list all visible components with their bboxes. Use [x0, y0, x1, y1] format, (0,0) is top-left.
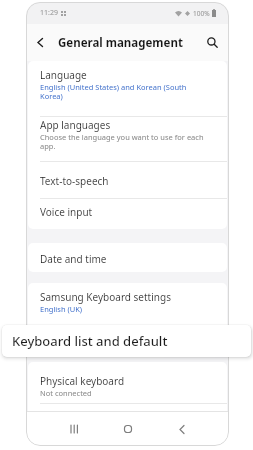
button[interactable]: Samsung Keyboard settings [28, 283, 227, 318]
button[interactable]: Physical keyboard [28, 362, 227, 403]
staticText: General management [58, 35, 183, 51]
staticText: Choose the language you want to use for … [40, 132, 204, 152]
button[interactable]: Voice input [28, 199, 227, 229]
staticText: Language [40, 68, 87, 82]
staticText: App languages [40, 118, 111, 132]
staticText: 100% [193, 9, 210, 18]
button[interactable] [26, 24, 54, 61]
button[interactable] [195, 24, 229, 61]
button[interactable] [168, 412, 196, 446]
staticText: 11:29 [40, 8, 58, 18]
staticText: Not connected [40, 388, 92, 398]
staticText: Text-to-speech [40, 174, 109, 188]
button[interactable] [114, 412, 142, 446]
staticText: Samsung Keyboard settings [40, 290, 171, 304]
staticText: Physical keyboard [40, 374, 125, 388]
button[interactable]: Language [28, 61, 227, 116]
staticText: Voice input [40, 205, 93, 219]
button[interactable] [60, 412, 88, 446]
staticText: English (UK) [40, 304, 83, 314]
button[interactable]: Text-to-speech [28, 162, 227, 198]
button[interactable]: App languages [28, 117, 227, 161]
staticText: Keyboard list and default [12, 332, 168, 350]
button[interactable]: Keyboard list and default [2, 325, 251, 357]
staticText: English (United States) and Korean (Sout… [40, 82, 187, 102]
staticText: Date and time [40, 252, 107, 266]
button[interactable]: Date and time [28, 243, 227, 272]
